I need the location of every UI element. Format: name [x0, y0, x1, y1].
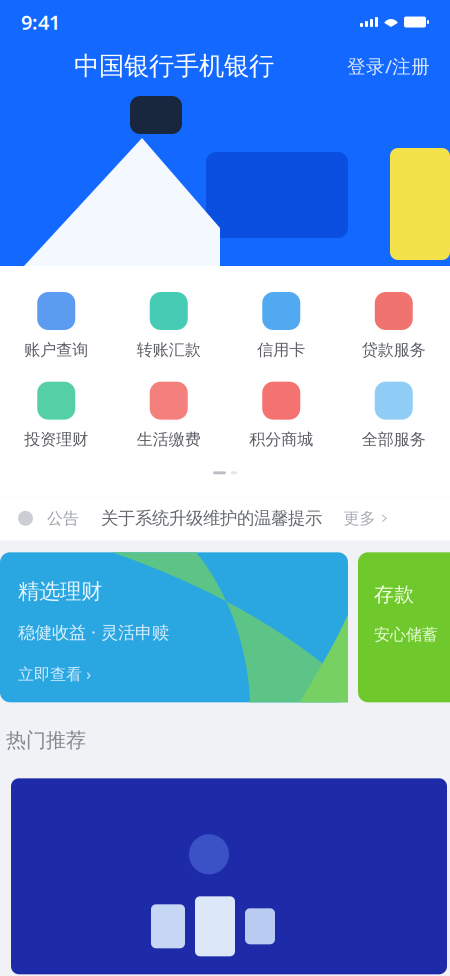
staticText: 转账汇款	[137, 340, 201, 360]
button[interactable]: 生活缴费	[112, 382, 225, 449]
button[interactable]: 账户查询	[0, 292, 112, 360]
staticText: 稳健收益 · 灵活申赎	[18, 620, 169, 643]
staticText: 账户查询	[24, 340, 88, 360]
staticText: 全部服务	[362, 430, 426, 449]
button[interactable]: 公告	[0, 496, 450, 540]
staticText: 生活缴费	[137, 430, 201, 449]
staticText: 关于系统升级维护的温馨提示	[101, 508, 322, 529]
staticText: 积分商城	[249, 430, 313, 449]
button[interactable]: 存款	[358, 552, 450, 702]
staticText: 中国银行手机银行	[74, 50, 274, 81]
button[interactable]: 全部服务	[337, 382, 450, 449]
staticText: 热门推荐	[6, 728, 86, 753]
button[interactable]	[3, 778, 447, 974]
staticText: 公告	[47, 508, 79, 528]
staticText: 贷款服务	[362, 340, 426, 360]
button[interactable]: 精选理财	[0, 552, 348, 702]
staticText: 立即查看 ›	[18, 663, 91, 684]
staticText: 投资理财	[24, 430, 88, 449]
staticText: 精选理财	[18, 578, 102, 604]
staticText: 存款	[374, 582, 414, 607]
staticText: 安心储蓄	[374, 625, 438, 645]
button[interactable]: 登录/注册	[347, 54, 430, 78]
staticText: 9:41	[21, 9, 60, 35]
button[interactable]: 信用卡	[225, 292, 337, 360]
button[interactable]: 积分商城	[225, 382, 337, 449]
staticText: 登录/注册	[347, 54, 430, 78]
button[interactable]: 贷款服务	[337, 292, 450, 360]
staticText: 信用卡	[257, 340, 305, 360]
button[interactable]: 投资理财	[0, 382, 112, 449]
staticText: 更多	[343, 508, 375, 528]
button[interactable]: 转账汇款	[112, 292, 225, 360]
